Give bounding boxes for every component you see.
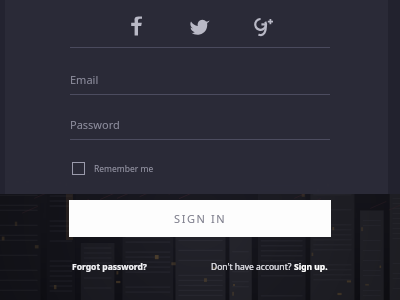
staticText: Don't have account?	[211, 261, 294, 273]
button[interactable]: SIGN IN	[69, 200, 331, 237]
button[interactable]: Forgot password?	[70, 259, 149, 275]
staticText: Remember me	[94, 163, 154, 175]
staticText: Sign up.	[294, 261, 328, 273]
staticText: Password	[70, 117, 120, 132]
staticText: SIGN IN	[174, 211, 227, 226]
button[interactable]: Email	[70, 72, 330, 95]
button[interactable]: Password	[70, 117, 330, 140]
button[interactable]: Sign in with Facebook	[123, 13, 149, 39]
button[interactable]: Sign in with Google Plus	[251, 13, 277, 39]
button[interactable]: Don't have account?	[209, 259, 330, 275]
button[interactable]: Sign in with Twitter	[187, 13, 213, 39]
staticText: Forgot password?	[72, 261, 147, 273]
button[interactable]: Remember me	[70, 159, 156, 178]
staticText: Email	[70, 72, 99, 87]
